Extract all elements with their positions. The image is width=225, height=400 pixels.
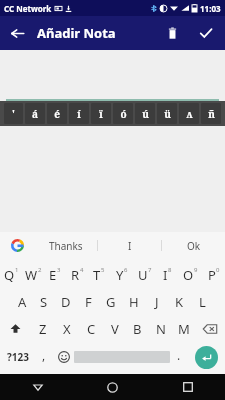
button[interactable]: L: [191, 288, 214, 315]
button[interactable]: Home: [75, 374, 150, 400]
staticText: L: [199, 293, 206, 311]
staticText: F: [85, 293, 92, 311]
button[interactable]: J: [145, 288, 168, 315]
button[interactable]: I: [98, 232, 161, 259]
button[interactable]: Save: [189, 16, 223, 50]
staticText: E: [49, 266, 57, 284]
staticText: 11:03: [200, 3, 221, 14]
button[interactable]: Google: [0, 232, 34, 259]
button[interactable]: A: [11, 288, 33, 315]
button[interactable]: T: [88, 261, 110, 288]
button[interactable]: O: [179, 261, 202, 288]
staticText: M: [178, 320, 190, 338]
staticText: Thanks: [49, 239, 83, 253]
button[interactable]: ó: [113, 103, 133, 124]
button[interactable]: W: [22, 261, 44, 288]
button[interactable]: Back: [0, 16, 34, 50]
button[interactable]: B: [126, 315, 149, 342]
staticText: T: [93, 266, 101, 284]
staticText: 7: [148, 266, 152, 274]
staticText: D: [61, 293, 71, 311]
staticText: X: [63, 320, 71, 338]
button[interactable]: Thanks: [34, 232, 97, 259]
button[interactable]: C: [79, 315, 103, 342]
staticText: CC Network: [4, 3, 52, 14]
button[interactable]: Y: [110, 261, 133, 288]
staticText: A: [18, 293, 27, 311]
staticText: I: [128, 239, 132, 253]
staticText: ʌ: [186, 107, 193, 121]
button[interactable]: á: [25, 103, 45, 124]
staticText: 5: [101, 266, 105, 274]
button[interactable]: ï: [91, 103, 111, 124]
staticText: 4: [80, 266, 84, 274]
staticText: N: [156, 320, 166, 338]
staticText: ú: [142, 107, 149, 121]
staticText: S: [40, 293, 48, 311]
staticText: ü: [164, 107, 171, 121]
staticText: 8: [168, 266, 172, 274]
button[interactable]: Delete: [155, 16, 189, 50]
button[interactable]: é: [47, 103, 67, 124]
staticText: ñ: [208, 107, 215, 121]
button[interactable]: ú: [135, 103, 155, 124]
button[interactable]: S: [33, 288, 55, 315]
button[interactable]: N: [149, 315, 172, 342]
button[interactable]: ü: [157, 103, 177, 124]
staticText: H: [129, 293, 139, 311]
button[interactable]: E: [44, 261, 66, 288]
button[interactable]: Q: [0, 261, 22, 288]
staticText: Añadir Nota: [37, 24, 116, 42]
button[interactable]: Back: [0, 374, 75, 400]
button[interactable]: ?123: [0, 342, 35, 372]
staticText: K: [175, 293, 184, 311]
button[interactable]: I: [156, 261, 179, 288]
button[interactable]: ': [4, 103, 23, 124]
button[interactable]: V: [103, 315, 126, 342]
button[interactable]: R: [66, 261, 88, 288]
button[interactable]: í: [69, 103, 89, 124]
staticText: 2: [38, 266, 42, 274]
button[interactable]: Enter: [195, 346, 218, 369]
staticText: 0: [216, 266, 220, 274]
button[interactable]: .: [170, 342, 188, 372]
button[interactable]: P: [202, 261, 225, 288]
button[interactable]: H: [122, 288, 145, 315]
button[interactable]: M: [172, 315, 195, 342]
staticText: I: [163, 266, 168, 284]
button[interactable]: Shift: [0, 315, 31, 342]
staticText: C: [87, 320, 96, 338]
staticText: U: [138, 266, 148, 284]
button[interactable]: Backspace: [195, 315, 225, 342]
staticText: ï: [99, 107, 103, 121]
staticText: Z: [39, 320, 47, 338]
button[interactable]: K: [168, 288, 191, 315]
staticText: é: [54, 107, 60, 121]
button[interactable]: ,: [35, 342, 53, 372]
button[interactable]: Ok: [162, 232, 225, 259]
staticText: .: [177, 347, 181, 363]
button[interactable]: ʌ: [179, 103, 199, 124]
staticText: Ok: [187, 239, 201, 253]
staticText: G: [106, 293, 116, 311]
staticText: ó: [120, 107, 127, 121]
staticText: O: [183, 266, 194, 284]
button[interactable]: X: [55, 315, 79, 342]
button[interactable]: ñ: [201, 103, 221, 124]
staticText: ': [12, 107, 15, 121]
staticText: á: [32, 107, 38, 121]
button[interactable]: G: [99, 288, 122, 315]
staticText: R: [71, 266, 80, 284]
button[interactable]: Z: [31, 315, 55, 342]
button[interactable]: D: [55, 288, 77, 315]
staticText: B: [133, 320, 142, 338]
button[interactable]: F: [77, 288, 99, 315]
staticText: 3: [57, 266, 61, 274]
staticText: Q: [4, 266, 15, 284]
button[interactable]: Recents: [150, 374, 225, 400]
button[interactable]: U: [133, 261, 156, 288]
staticText: P: [208, 266, 216, 284]
button[interactable]: Emoji: [53, 342, 74, 372]
staticText: 1: [15, 266, 19, 274]
